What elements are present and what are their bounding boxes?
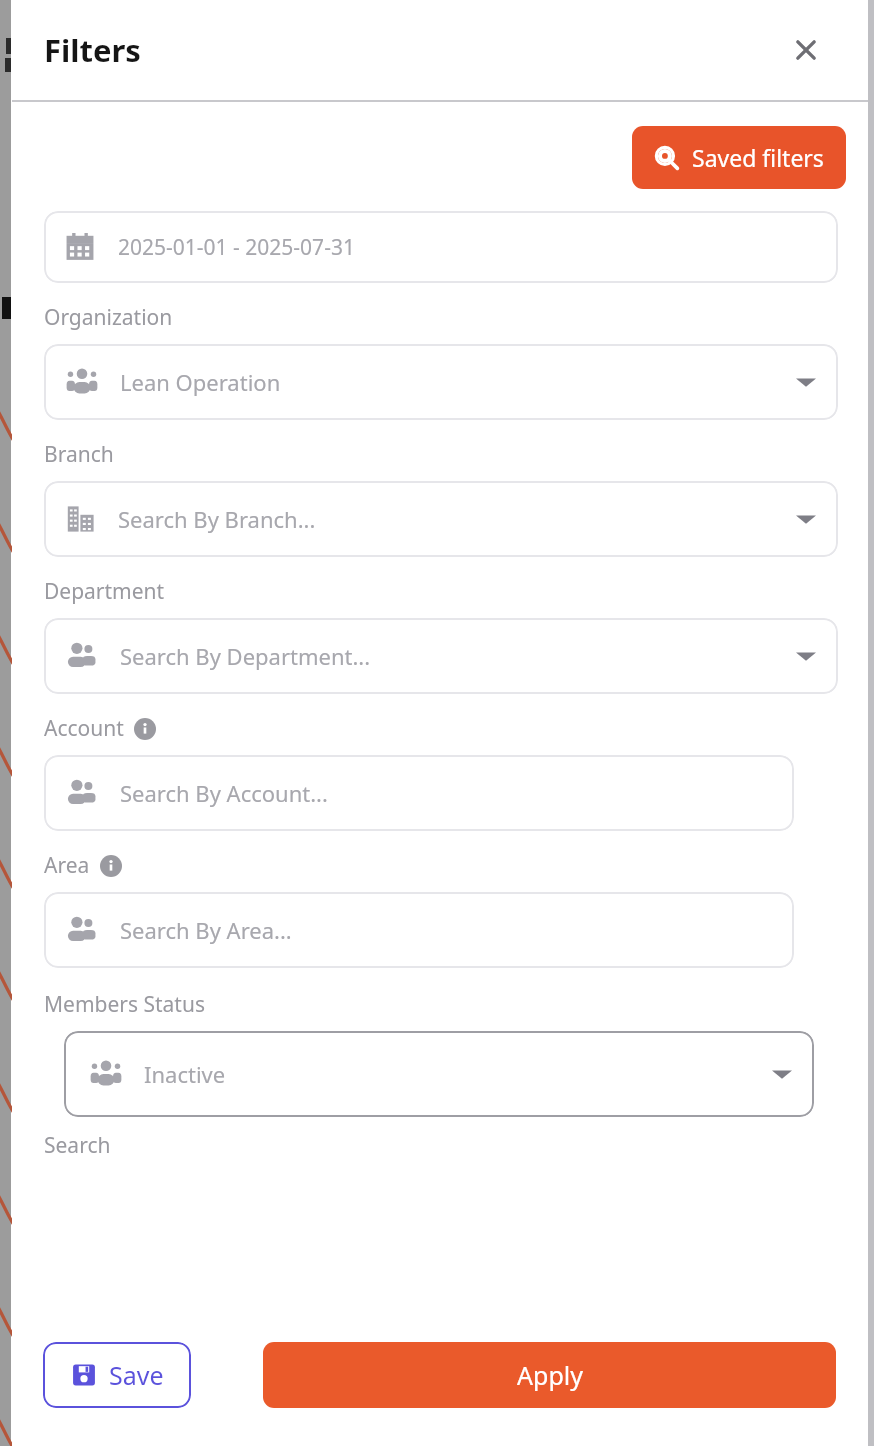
- staticText: Search By Area...: [120, 915, 292, 945]
- button[interactable]: Inactive: [64, 1031, 814, 1117]
- button[interactable]: Apply: [263, 1342, 836, 1408]
- button[interactable]: Close: [786, 30, 826, 70]
- staticText: Members Status: [44, 990, 205, 1019]
- staticText: Search By Branch...: [118, 504, 316, 534]
- button[interactable]: Search By Area...: [44, 892, 794, 968]
- staticText: Search By Account...: [120, 778, 328, 808]
- button[interactable]: Saved filters: [632, 126, 846, 189]
- staticText: Filters: [44, 29, 141, 71]
- staticText: Apply: [517, 1358, 583, 1392]
- button[interactable]: Search By Department...: [44, 618, 838, 694]
- staticText: 2025-01-01 - 2025-07-31: [118, 233, 355, 262]
- staticText: Area: [44, 851, 90, 880]
- staticText: Search: [44, 1131, 111, 1160]
- staticText: Organization: [44, 303, 173, 332]
- button[interactable]: Search By Branch...: [44, 481, 838, 557]
- staticText: Inactive: [144, 1059, 226, 1089]
- button[interactable]: Save: [43, 1342, 191, 1408]
- button[interactable]: Search By Account...: [44, 755, 794, 831]
- staticText: Search By Department...: [120, 641, 371, 671]
- button[interactable]: 2025-01-01 - 2025-07-31: [44, 211, 838, 283]
- staticText: Saved filters: [692, 142, 824, 173]
- staticText: Department: [44, 577, 165, 606]
- staticText: Lean Operation: [120, 367, 281, 397]
- button[interactable]: Lean Operation: [44, 344, 838, 420]
- staticText: Save: [109, 1358, 164, 1392]
- staticText: Account: [44, 714, 124, 743]
- staticText: Branch: [44, 440, 114, 469]
